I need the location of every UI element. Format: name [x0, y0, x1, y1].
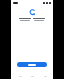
- button[interactable]: [17, 62, 47, 67]
- button[interactable]: Recents: [41, 73, 49, 79]
- button[interactable]: Home: [28, 73, 36, 79]
- other: App logo: [29, 9, 36, 16]
- button[interactable]: Back: [16, 73, 24, 79]
